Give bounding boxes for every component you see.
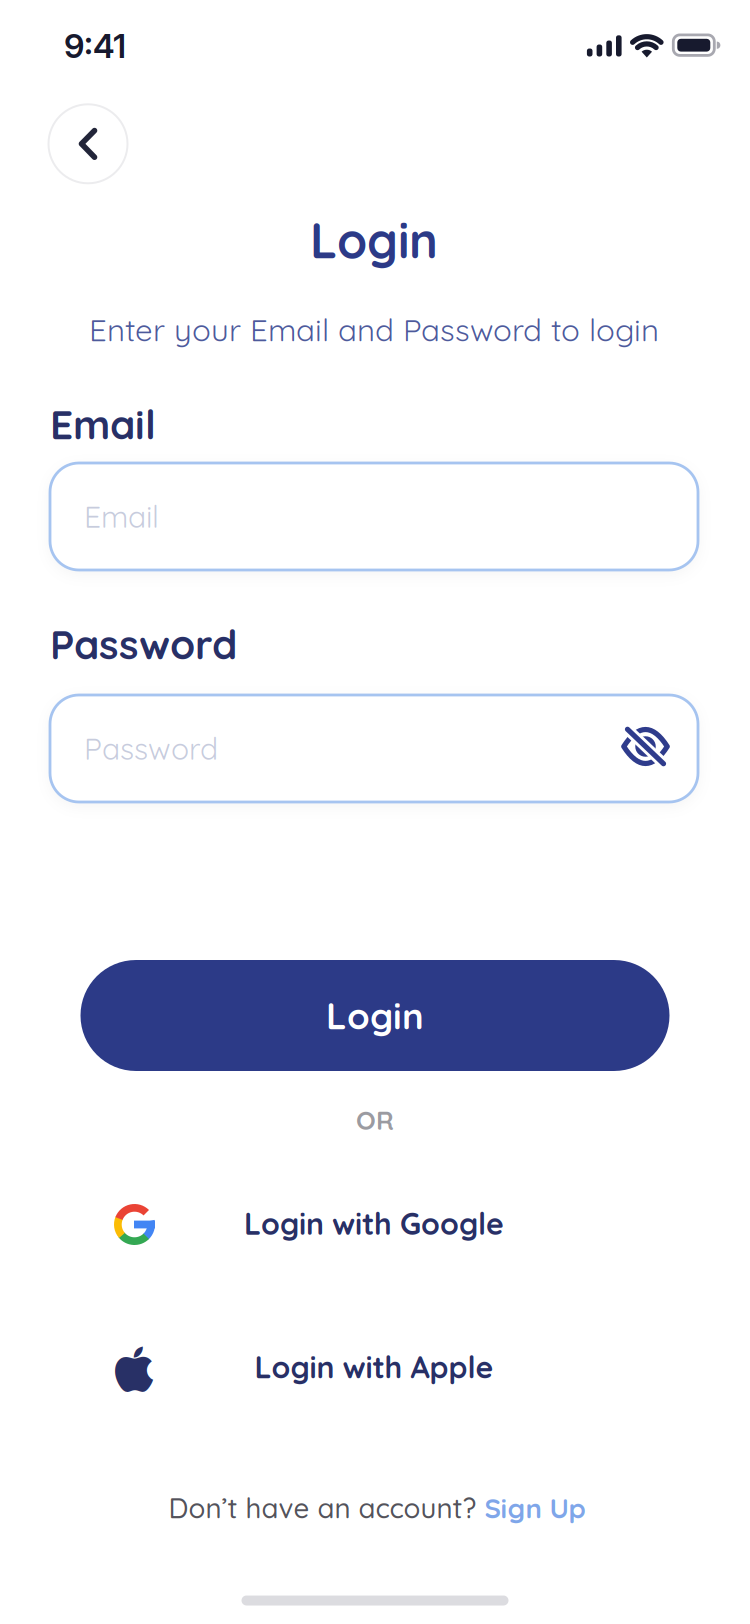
button[interactable]	[48, 104, 127, 183]
staticText: Don’t have an account?	[168, 1491, 476, 1525]
button[interactable]: Login	[80, 960, 669, 1071]
staticText: Password	[84, 730, 218, 767]
staticText: Enter your Email and Password to login	[89, 310, 659, 349]
button[interactable]: Password	[50, 695, 698, 802]
button[interactable]: Email	[50, 463, 698, 570]
button[interactable]	[615, 716, 675, 776]
staticText: Login	[310, 210, 438, 270]
staticText: Email	[84, 498, 159, 535]
staticText: 9:41	[64, 26, 126, 66]
staticText: 	[115, 1346, 154, 1395]
staticText: Login	[326, 993, 424, 1038]
button[interactable]: Don’t have an account?	[168, 1491, 585, 1525]
staticText: Password	[50, 619, 237, 669]
staticText: Email	[50, 399, 156, 449]
button[interactable]: 	[0, 1323, 750, 1413]
staticText: Login with Apple	[254, 1348, 493, 1386]
staticText: OR	[356, 1104, 394, 1136]
button[interactable]: Login with Google	[0, 1179, 750, 1269]
staticText: Sign Up	[484, 1491, 585, 1525]
staticText: Login with Google	[244, 1204, 504, 1242]
